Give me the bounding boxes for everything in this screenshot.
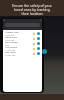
staticText: 1 hour ago [5, 49, 16, 51]
staticText: Anna Smith [5, 46, 18, 49]
button[interactable] [5, 23, 40, 27]
staticText: Maria Holly [5, 36, 17, 39]
button[interactable]: Anna Smith [3, 46, 42, 51]
button[interactable]: Jack Lewis [3, 51, 42, 56]
staticText: 2 min ago [5, 34, 15, 36]
button[interactable]: Locate [42, 49, 47, 54]
staticText: 3 hour ago [5, 54, 16, 56]
staticText: 5 min ago [5, 39, 15, 41]
staticText: Andrew Scott [5, 31, 19, 34]
staticText: now [5, 44, 9, 46]
staticText: Ensure the safety of your loved ones by … [2, 3, 62, 16]
button[interactable]: Andrew Scott [3, 31, 42, 36]
button[interactable]: Maria Holly [3, 36, 42, 41]
button[interactable]: Peter Brown [3, 41, 42, 46]
staticText: Jack Lewis [5, 51, 16, 54]
staticText: Peter Brown [5, 41, 18, 44]
